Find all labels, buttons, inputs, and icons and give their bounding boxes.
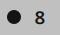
staticText: 8 bbox=[34, 5, 45, 29]
